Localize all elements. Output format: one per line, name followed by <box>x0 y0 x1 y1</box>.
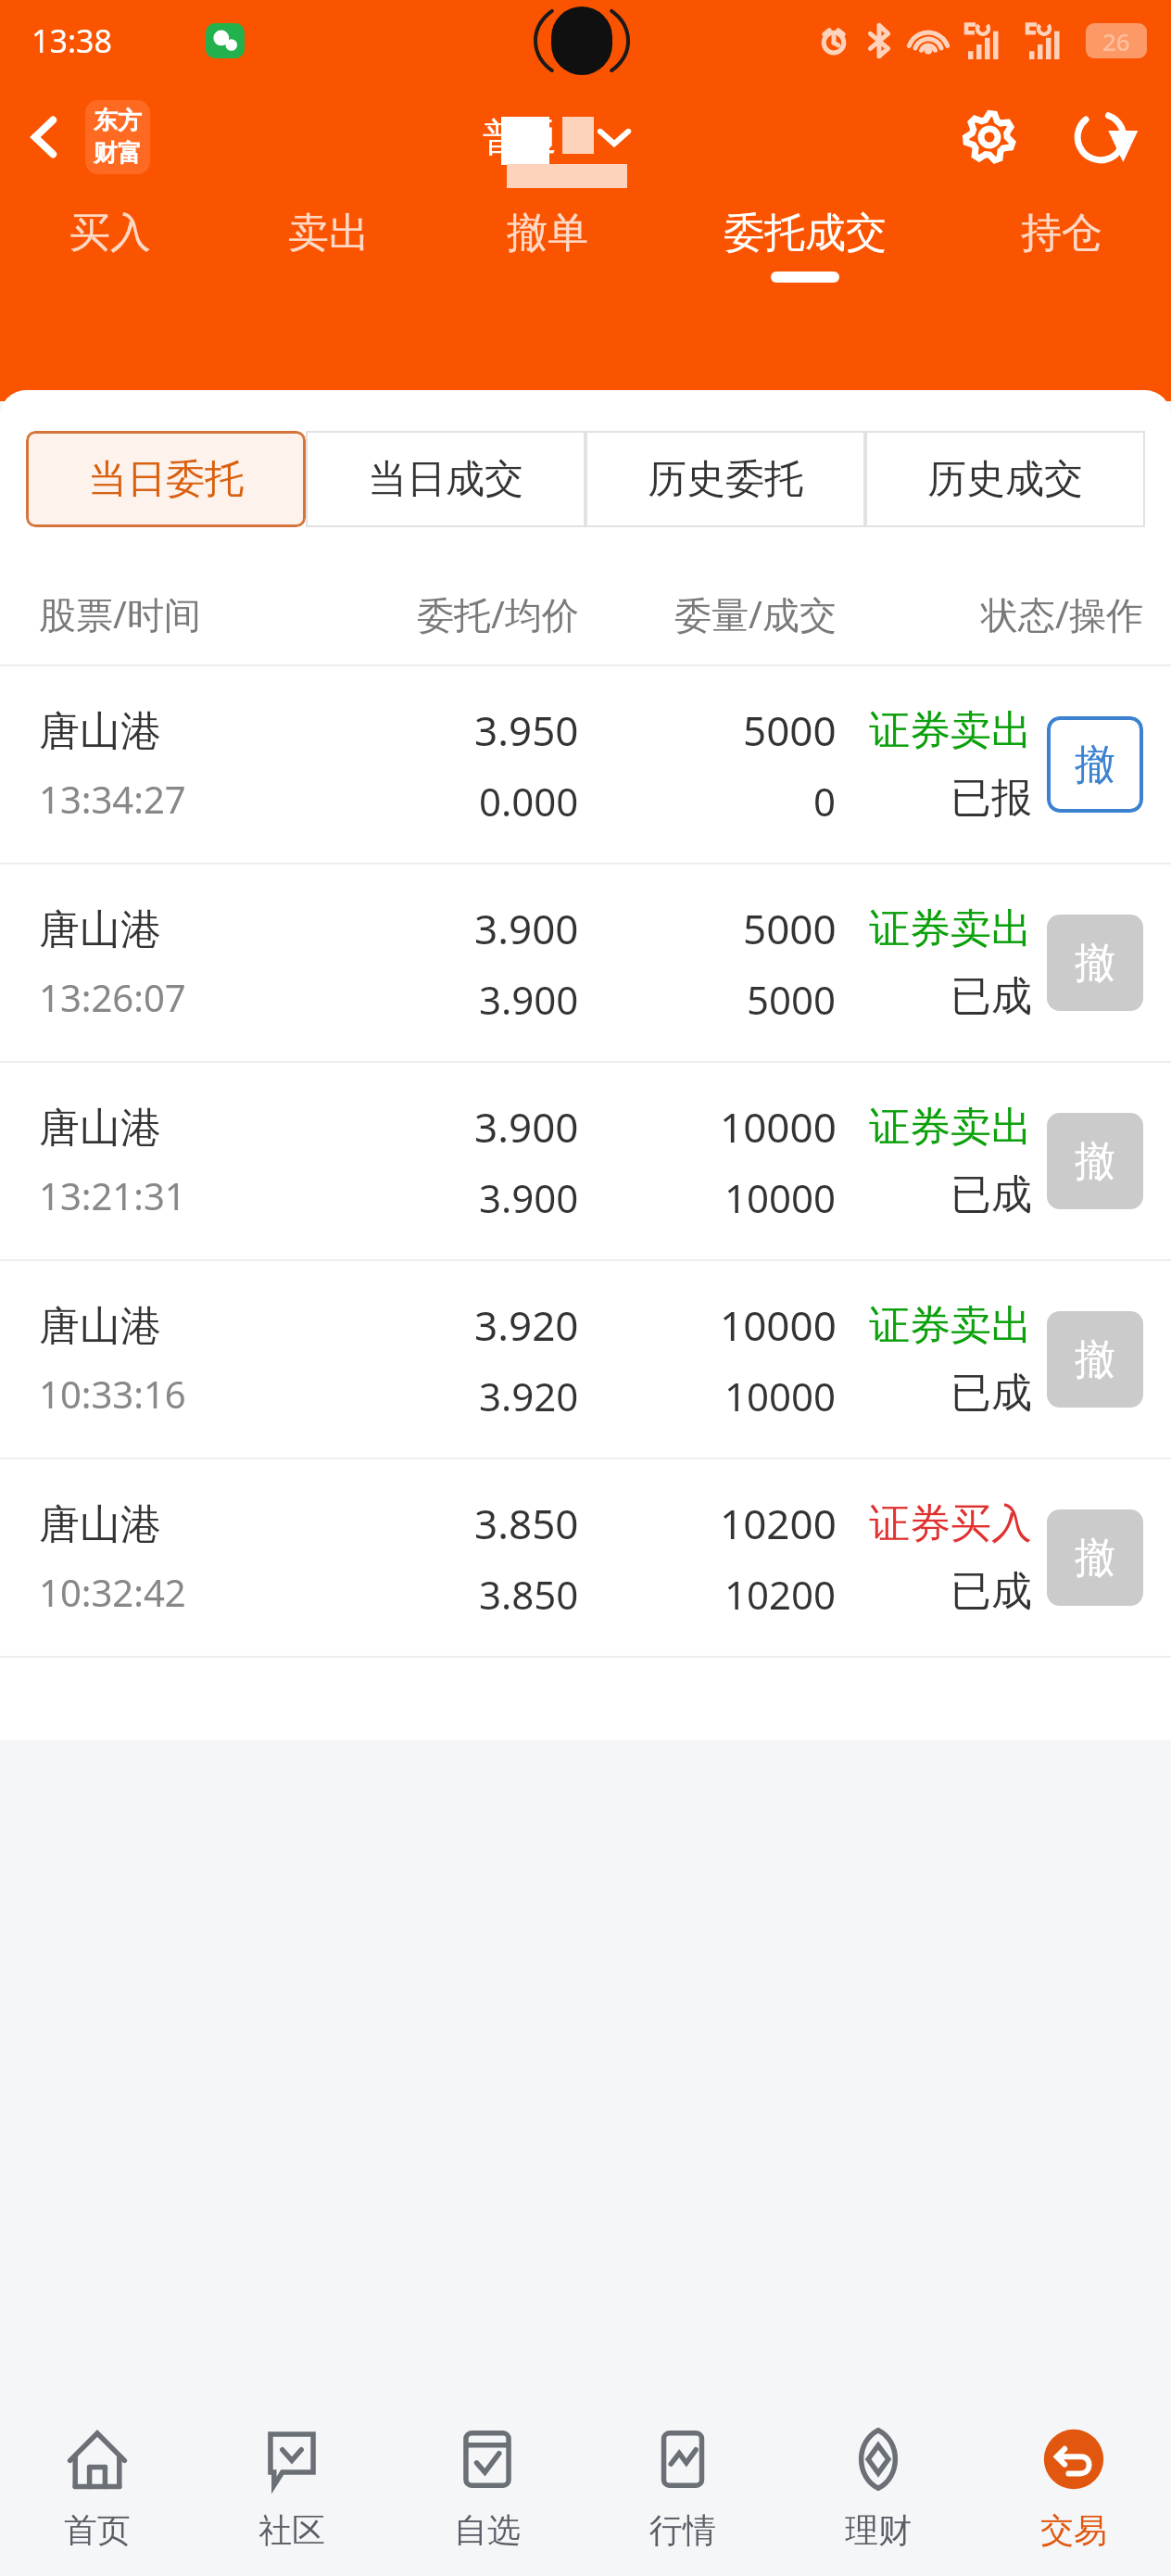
staticText: 10:33:16 <box>39 1369 186 1419</box>
staticText: 10200 <box>720 1496 837 1551</box>
staticText: 已报 <box>951 773 1032 824</box>
staticText: 3.950 <box>474 702 579 758</box>
button[interactable]: 设置 <box>947 95 1032 180</box>
other: 切换账户 <box>596 124 633 150</box>
staticText: 10000 <box>720 1099 837 1155</box>
button[interactable]: 撤 <box>1047 1509 1143 1606</box>
staticText: 当日成交 <box>368 455 523 504</box>
staticText: 撤 <box>1075 739 1115 790</box>
staticText: 当日委托 <box>88 455 244 504</box>
staticText: 首页 <box>64 2509 131 2551</box>
staticText: 撤 <box>1075 938 1115 989</box>
button[interactable]: 东方 <box>85 100 150 174</box>
button[interactable]: 历史委托 <box>585 431 865 527</box>
staticText: 3.900 <box>479 1171 579 1224</box>
staticText: 0 <box>813 775 837 827</box>
button[interactable]: 唐山港 <box>0 865 1171 1061</box>
staticText: 行情 <box>649 2509 716 2551</box>
staticText: 撤 <box>1075 1136 1115 1187</box>
staticText: 13:26:07 <box>39 972 186 1022</box>
staticText: 委托/均价 <box>321 588 579 639</box>
staticText: 0.000 <box>479 775 579 827</box>
button[interactable]: 撤 <box>1047 1113 1143 1209</box>
staticText: 已成 <box>951 1169 1032 1220</box>
button[interactable]: 交易 <box>976 2391 1171 2576</box>
staticText: 普通 <box>483 114 557 160</box>
staticText: 10000 <box>724 1370 837 1422</box>
staticText: 唐山港 <box>39 904 161 955</box>
staticText: 唐山港 <box>39 1103 161 1154</box>
staticText: 交易 <box>1040 2509 1107 2551</box>
staticText: 证券卖出 <box>869 1102 1032 1153</box>
staticText: 3.850 <box>474 1496 579 1551</box>
button[interactable]: 唐山港 <box>0 1063 1171 1259</box>
staticText: 东方 <box>94 106 142 136</box>
staticText: 已成 <box>951 1566 1032 1617</box>
button[interactable]: 当日成交 <box>306 431 585 527</box>
button[interactable]: 当日委托 <box>26 431 306 527</box>
button[interactable]: 历史成交 <box>865 431 1145 527</box>
staticText: 13:38 <box>31 19 112 62</box>
button[interactable]: 持仓 <box>952 193 1171 304</box>
staticText: 理财 <box>845 2509 912 2551</box>
staticText: 证券卖出 <box>869 705 1032 756</box>
staticText: 撤 <box>1075 1533 1115 1584</box>
button[interactable]: 首页 <box>0 2391 195 2576</box>
staticText: 撤单 <box>507 208 588 259</box>
staticText: 证券买入 <box>869 1498 1032 1549</box>
staticText: 历史成交 <box>927 455 1083 504</box>
staticText: 自选 <box>454 2509 521 2551</box>
staticText: 委量/成交 <box>579 588 837 639</box>
button[interactable]: 刷新 <box>1058 95 1143 180</box>
button[interactable]: 理财 <box>780 2391 976 2576</box>
staticText: 13:21:31 <box>39 1170 186 1220</box>
button[interactable]: 撤 <box>1047 1311 1143 1408</box>
staticText: 3.920 <box>474 1297 579 1353</box>
staticText: 唐山港 <box>39 1499 161 1550</box>
staticText: 撤 <box>1075 1334 1115 1385</box>
staticText: 唐山港 <box>39 1301 161 1352</box>
staticText: 唐山港 <box>39 706 161 757</box>
staticText: 已成 <box>951 971 1032 1022</box>
staticText: 股票/时间 <box>39 588 321 639</box>
button[interactable]: 唐山港 <box>0 1459 1171 1656</box>
staticText: 3.900 <box>474 901 579 956</box>
button[interactable]: 撤 <box>1047 716 1143 813</box>
staticText: 10:32:42 <box>39 1567 186 1617</box>
staticText: 5000 <box>743 702 837 758</box>
staticText: 状态/操作 <box>837 588 1143 639</box>
staticText: 证券卖出 <box>869 903 1032 954</box>
staticText: 13:34:27 <box>39 774 186 824</box>
staticText: 证券卖出 <box>869 1300 1032 1351</box>
staticText: 持仓 <box>1021 208 1102 259</box>
staticText: 卖出 <box>288 208 370 259</box>
staticText: 历史委托 <box>648 455 803 504</box>
button[interactable]: 唐山港 <box>0 1261 1171 1458</box>
button[interactable]: 委托成交 <box>657 193 952 304</box>
staticText: 10000 <box>724 1171 837 1224</box>
button[interactable]: 卖出 <box>220 193 438 304</box>
staticText: 买入 <box>69 208 151 259</box>
staticText: 3.900 <box>479 973 579 1026</box>
staticText: 5000 <box>747 973 837 1026</box>
staticText: 委托成交 <box>724 208 887 259</box>
staticText: 3.850 <box>479 1568 579 1621</box>
button[interactable]: 社区 <box>195 2391 389 2576</box>
button[interactable]: 普通 <box>483 113 633 161</box>
staticText: 3.920 <box>479 1370 579 1422</box>
button[interactable]: 买入 <box>0 193 220 304</box>
staticText: 财富 <box>94 138 142 169</box>
button[interactable]: 行情 <box>585 2391 780 2576</box>
staticText: 26 <box>1102 25 1130 57</box>
button[interactable]: 撤单 <box>438 193 657 304</box>
staticText: 3.900 <box>474 1099 579 1155</box>
staticText: 10200 <box>724 1568 837 1621</box>
button[interactable]: 撤 <box>1047 915 1143 1011</box>
button[interactable]: 返回 <box>0 93 89 182</box>
staticText: 5000 <box>743 901 837 956</box>
button[interactable]: 唐山港 <box>0 666 1171 863</box>
staticText: 社区 <box>258 2509 325 2551</box>
staticText: 已成 <box>951 1368 1032 1419</box>
staticText: 10000 <box>720 1297 837 1353</box>
button[interactable]: 自选 <box>389 2391 585 2576</box>
